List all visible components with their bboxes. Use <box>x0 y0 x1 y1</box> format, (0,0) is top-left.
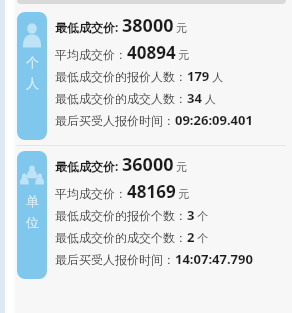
button[interactable]: 个人 <box>14 7 292 145</box>
staticText: 最低成交价的报价个数：3 个 <box>55 206 209 224</box>
staticText: 最低成交价的成交人数：34 人 <box>55 89 216 107</box>
staticText: 单 <box>26 193 39 209</box>
staticText: 最低成交价: 38000 元 <box>55 13 188 38</box>
button[interactable]: 个人 <box>17 12 47 140</box>
staticText: 位 <box>26 214 39 230</box>
staticText: 平均成交价：40894 元 <box>55 41 190 64</box>
staticText: 人 <box>26 75 39 91</box>
staticText: 平均成交价：48169 元 <box>55 180 190 203</box>
staticText: 最低成交价的成交个数：2 个 <box>55 228 209 246</box>
staticText: 最后买受人报价时间：14:07:47.790 <box>55 250 253 268</box>
staticText: 个 <box>26 54 39 70</box>
staticText: 最低成交价的报价人数：179 人 <box>55 67 224 85</box>
button[interactable]: 单位 <box>17 151 47 279</box>
staticText: 最后买受人报价时间：09:26:09.401 <box>55 111 253 129</box>
staticText: 最低成交价: 36000 元 <box>55 152 188 177</box>
button[interactable]: 单位 <box>14 146 292 284</box>
